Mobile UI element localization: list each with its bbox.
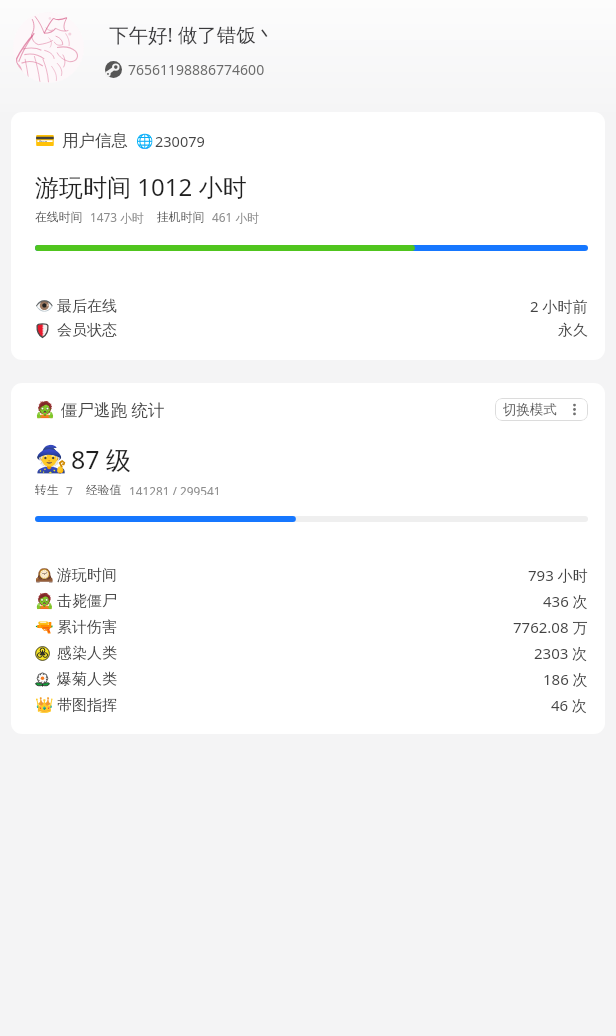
staticText: 👁 — [35, 297, 54, 315]
staticText: 击毙僵尸 — [57, 592, 117, 611]
staticText: 用户信息 — [62, 130, 128, 151]
staticText: 46 次 — [551, 695, 588, 715]
staticText: 会员状态 — [57, 321, 117, 340]
staticText: 461 小时 — [212, 209, 259, 225]
staticText: 87 级 — [71, 442, 132, 476]
staticText: 436 次 — [543, 591, 588, 611]
button[interactable]: 💳 — [35, 130, 205, 151]
staticText: 挂机时间 — [157, 210, 205, 225]
staticText: 7762.08 万 — [513, 617, 588, 637]
staticText: 1473 小时 — [90, 209, 144, 225]
staticText: 永久 — [558, 321, 588, 340]
staticText: 下午好! 做了错饭丶 — [109, 21, 276, 48]
button[interactable]: 🧟 — [35, 588, 588, 614]
button[interactable]: 切换模式 — [495, 398, 588, 421]
staticText: 切换模式 — [503, 401, 557, 418]
button[interactable]: 👁 — [35, 294, 588, 318]
staticText: 感染人类 — [57, 644, 117, 663]
button[interactable]: 感染人类 — [35, 640, 588, 666]
staticText: 2 小时前 — [530, 296, 588, 316]
staticText: 最后在线 — [57, 297, 117, 316]
staticText: 带图指挥 — [57, 696, 117, 715]
staticText: 转生 — [35, 483, 59, 495]
button[interactable]: 🔫 — [35, 614, 588, 640]
staticText: 793 小时 — [528, 565, 588, 585]
staticText: 爆菊人类 — [57, 670, 117, 689]
staticText: 👑 — [35, 696, 54, 714]
staticText: 在线时间 — [35, 210, 83, 225]
button[interactable]: 会员状态 — [35, 318, 588, 342]
staticText: 💳 — [35, 131, 55, 150]
button[interactable]: 爆菊人类 — [35, 666, 588, 692]
staticText: 僵尸逃跑 统计 — [61, 398, 165, 421]
staticText: 🧙 — [35, 444, 68, 474]
staticText: 230079 — [155, 131, 205, 151]
staticText: 经验值 — [86, 483, 122, 495]
staticText: 🌐 — [136, 133, 154, 149]
staticText: 141281 / 299541 — [129, 483, 221, 495]
other: More options — [573, 403, 576, 416]
staticText: 累计伤害 — [57, 618, 117, 637]
staticText: 2303 次 — [534, 643, 588, 663]
staticText: 76561198886774600 — [128, 60, 265, 79]
button[interactable]: 下午好! 做了错饭丶 — [0, 0, 616, 112]
staticText: 🕰 — [35, 566, 54, 584]
button[interactable]: 🕰 — [35, 562, 588, 588]
staticText: 7 — [66, 483, 73, 495]
staticText: 🧟 — [35, 592, 54, 610]
staticText: 游玩时间 1012 小时 — [35, 170, 247, 203]
staticText: 🔫 — [35, 618, 54, 636]
staticText: 186 次 — [543, 669, 588, 689]
button[interactable]: 👑 — [35, 692, 588, 718]
staticText: 🧟 — [35, 400, 55, 419]
staticText: 游玩时间 — [57, 566, 117, 585]
